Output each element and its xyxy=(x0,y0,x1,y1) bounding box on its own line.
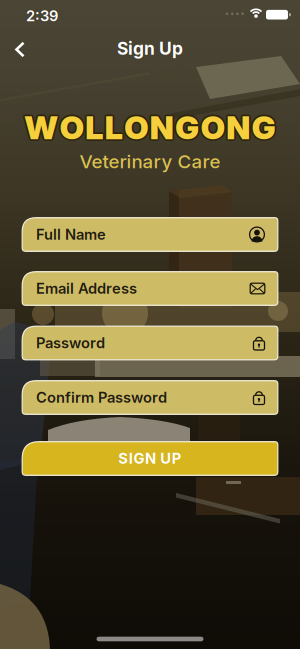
staticText: O xyxy=(123,107,147,145)
staticText: O xyxy=(61,109,85,146)
staticText: G xyxy=(175,107,199,145)
staticText: O xyxy=(61,107,85,145)
staticText: G xyxy=(250,107,274,145)
staticText: Password xyxy=(36,334,105,352)
staticText: N xyxy=(225,109,249,146)
button[interactable]: Email Address xyxy=(21,271,278,306)
staticText: O xyxy=(58,107,82,145)
staticText: O xyxy=(201,109,225,146)
staticText: G xyxy=(174,109,198,146)
staticText: G xyxy=(174,107,198,145)
staticText: G xyxy=(252,107,276,145)
staticText: Full Name xyxy=(36,226,106,243)
staticText: O xyxy=(124,107,148,145)
staticText: W xyxy=(23,107,57,145)
staticText: N xyxy=(148,109,172,146)
staticText: L xyxy=(85,110,103,148)
staticText: G xyxy=(174,110,198,148)
button[interactable]: Password xyxy=(21,325,278,360)
staticText: W xyxy=(23,110,57,148)
button[interactable]: Full Name xyxy=(21,217,278,252)
staticText: L xyxy=(87,109,105,146)
staticText: W xyxy=(24,110,58,148)
staticText: G xyxy=(176,107,200,145)
staticText: L xyxy=(86,107,104,145)
staticText: W xyxy=(25,107,59,145)
staticText: O xyxy=(58,110,82,148)
staticText: N xyxy=(227,110,251,148)
staticText: O xyxy=(199,109,223,146)
staticText: G xyxy=(177,109,201,146)
staticText: O xyxy=(124,109,148,146)
staticText: O xyxy=(201,107,225,145)
staticText: O xyxy=(201,110,225,148)
staticText: G xyxy=(252,109,276,146)
staticText: O xyxy=(60,110,84,148)
staticText: G xyxy=(250,110,274,148)
staticText: N xyxy=(228,109,252,146)
staticText: Confirm Password xyxy=(36,389,167,406)
staticText: N xyxy=(226,107,250,145)
staticText: G xyxy=(175,109,199,146)
staticText: N xyxy=(225,110,249,148)
staticText: O xyxy=(58,109,82,146)
staticText: W xyxy=(26,109,60,146)
staticText: N xyxy=(151,110,175,148)
staticText: G xyxy=(175,110,199,148)
button[interactable]: Confirm Password xyxy=(21,380,278,415)
staticText: L xyxy=(84,110,102,148)
staticText: N xyxy=(151,107,175,145)
staticText: L xyxy=(103,110,121,148)
staticText: N xyxy=(148,110,172,148)
staticText: N xyxy=(148,107,172,145)
staticText: N xyxy=(227,107,251,145)
staticText: L xyxy=(103,109,121,146)
staticText: L xyxy=(106,109,124,146)
staticText: 2:39 xyxy=(26,7,58,25)
staticText: N xyxy=(151,109,175,146)
staticText: N xyxy=(150,107,174,145)
staticText: O xyxy=(60,107,84,145)
staticText: G xyxy=(252,110,276,148)
staticText: O xyxy=(125,110,149,148)
staticText: O xyxy=(122,109,146,146)
staticText: O xyxy=(199,110,223,148)
staticText: L xyxy=(106,107,124,145)
staticText: O xyxy=(202,107,226,145)
staticText: L xyxy=(103,107,121,145)
staticText: L xyxy=(106,110,124,148)
staticText: G xyxy=(253,109,277,146)
staticText: W xyxy=(23,109,57,146)
staticText: N xyxy=(150,109,174,146)
staticText: O xyxy=(202,109,226,146)
staticText: SIGN UP xyxy=(118,450,182,467)
staticText: L xyxy=(85,107,103,145)
button[interactable]: SIGN UP xyxy=(21,441,278,476)
staticText: L xyxy=(105,110,123,148)
staticText: N xyxy=(226,109,250,146)
staticText: L xyxy=(86,110,104,148)
staticText: O xyxy=(199,107,223,145)
staticText: N xyxy=(225,107,249,145)
staticText: L xyxy=(85,109,103,146)
staticText: O xyxy=(126,109,150,146)
staticText: O xyxy=(202,110,226,148)
staticText: O xyxy=(61,110,85,148)
staticText: G xyxy=(250,109,274,146)
staticText: W xyxy=(24,109,58,146)
button[interactable]: Back xyxy=(5,31,35,67)
staticText: G xyxy=(176,110,200,148)
staticText: N xyxy=(150,110,174,148)
staticText: W xyxy=(24,107,58,145)
staticText: L xyxy=(84,107,102,145)
staticText: G xyxy=(253,107,277,145)
staticText: O xyxy=(60,109,84,146)
staticText: Sign Up xyxy=(117,38,183,59)
staticText: L xyxy=(83,109,101,146)
staticText: O xyxy=(125,107,149,145)
staticText: W xyxy=(25,110,59,148)
staticText: N xyxy=(226,110,250,148)
staticText: Email Address xyxy=(36,280,137,297)
staticText: O xyxy=(124,110,148,148)
staticText: Veterinary Care xyxy=(79,150,220,172)
